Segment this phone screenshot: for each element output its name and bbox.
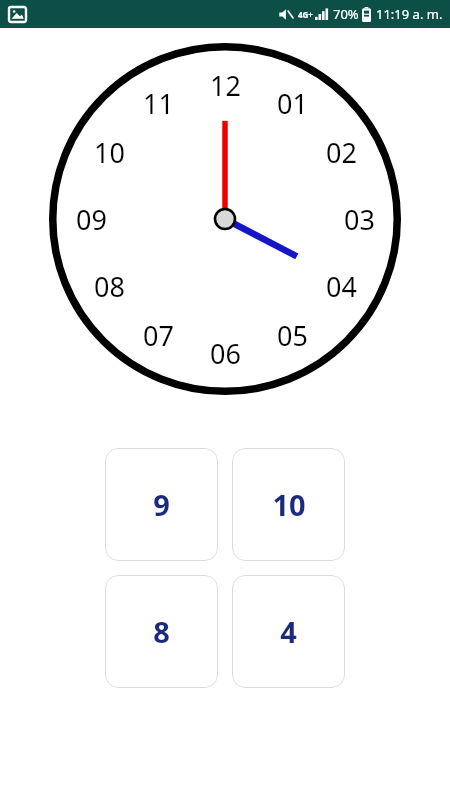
staticText: 03 <box>344 201 375 238</box>
staticText: 02 <box>326 134 357 171</box>
staticText: 70% <box>333 5 359 23</box>
staticText: 04 <box>326 268 357 305</box>
staticText: 07 <box>143 317 174 354</box>
staticText: 11:19 a. m. <box>376 5 443 23</box>
staticText: 08 <box>94 268 125 305</box>
button[interactable]: 4 <box>232 575 345 688</box>
staticText: 01 <box>277 85 308 122</box>
staticText: 12 <box>210 67 241 104</box>
staticText: 11 <box>143 85 174 122</box>
staticText: 05 <box>277 317 308 354</box>
other: Screenshot <box>9 7 26 22</box>
button[interactable]: 8 <box>105 575 218 688</box>
staticText: 10 <box>94 134 125 171</box>
staticText: 4G+ <box>298 9 313 20</box>
staticText: 09 <box>76 201 107 238</box>
staticText: 8 <box>153 612 170 651</box>
button[interactable]: 10 <box>232 448 345 561</box>
staticText: 10 <box>272 485 306 524</box>
button[interactable]: 9 <box>105 448 218 561</box>
staticText: 9 <box>153 485 170 524</box>
staticText: 4 <box>280 612 297 651</box>
staticText: 06 <box>210 335 241 372</box>
